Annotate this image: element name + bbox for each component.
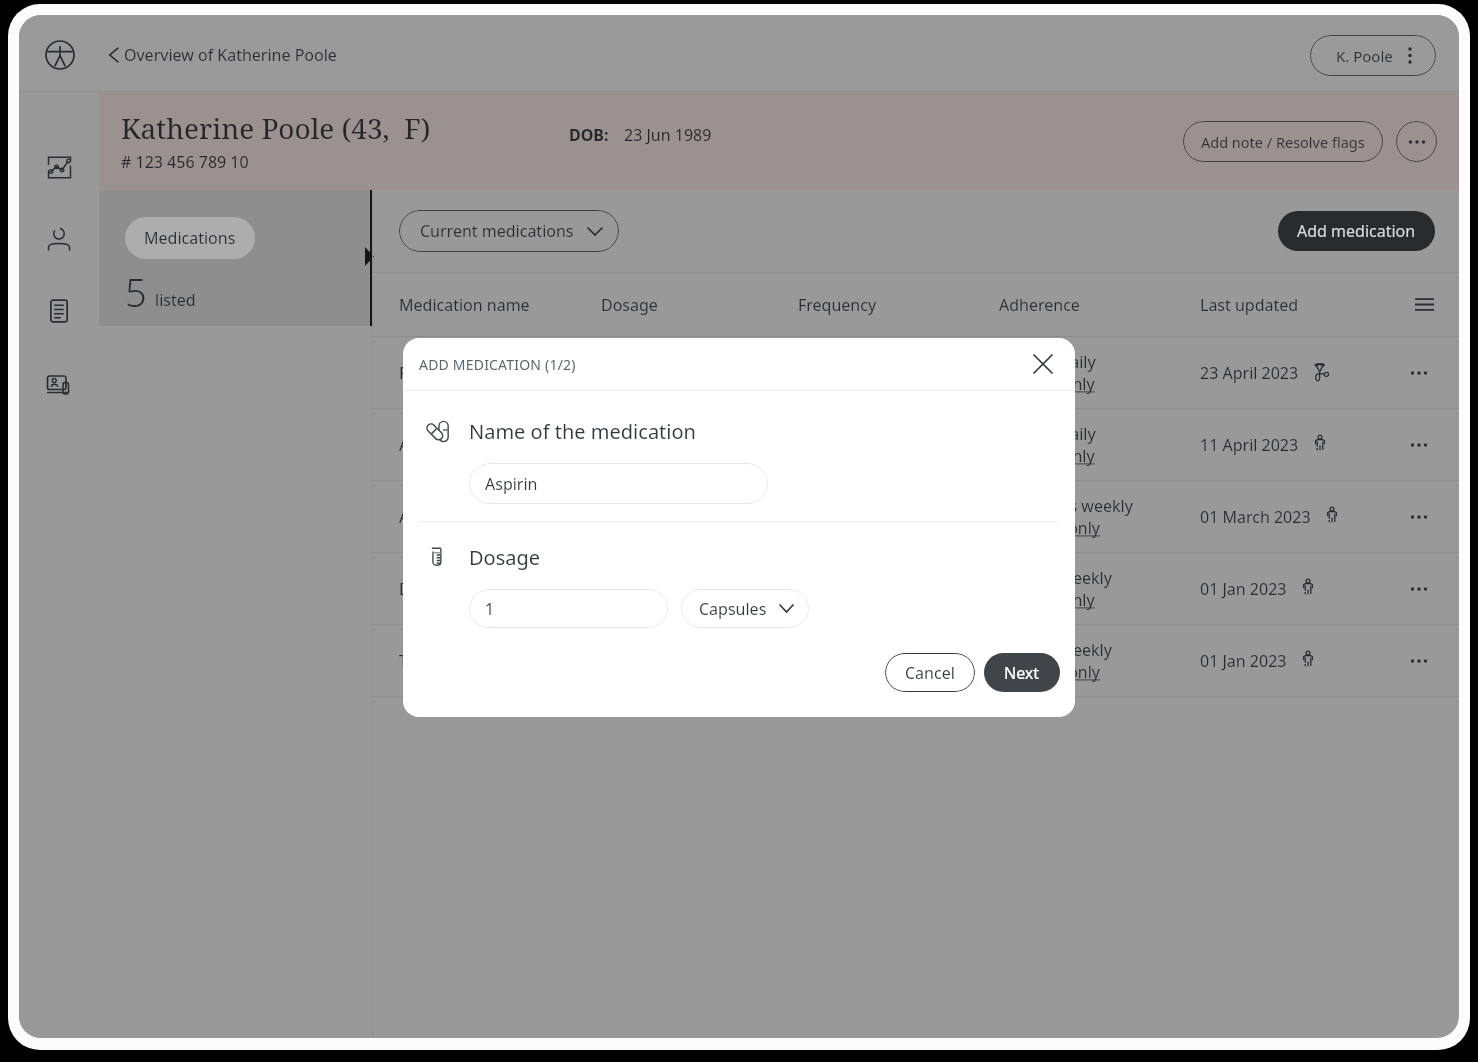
staticText: Cancel <box>905 662 955 684</box>
button[interactable]: Capsules <box>681 589 809 628</box>
staticText: 23 Jun 1989 <box>624 124 712 146</box>
staticText: Medications <box>144 227 236 249</box>
staticText: 01 Jan 2023 <box>1200 650 1287 672</box>
staticText: Katherine Poole (43, F) <box>121 109 431 147</box>
staticText: 23 April 2023 <box>1200 362 1299 384</box>
staticText: morning only <box>999 661 1101 683</box>
button[interactable]: Row options <box>1404 502 1434 532</box>
staticText: Add note / Resolve flags <box>1201 132 1365 152</box>
button[interactable]: Atorvastatin <box>372 481 1459 552</box>
staticText: listed <box>155 289 196 311</box>
staticText: Name of the medication <box>469 418 696 445</box>
button[interactable]: Row options <box>1404 574 1434 604</box>
staticText: morning only <box>798 517 900 539</box>
staticText: 5 <box>125 266 147 318</box>
staticText: Dosage <box>601 294 798 316</box>
button[interactable]: Row options <box>1404 358 1434 388</box>
staticText: Frequency <box>798 294 999 316</box>
staticText: Capsules <box>699 598 767 620</box>
button[interactable]: K. Poole <box>1310 35 1436 76</box>
staticText: 2 doses weekly <box>798 639 911 661</box>
staticText: Next <box>1004 662 1040 684</box>
button[interactable]: Dalteparin <box>372 553 1459 624</box>
button[interactable]: Close <box>1027 348 1059 380</box>
button[interactable]: Amoxicillin <box>372 409 1459 480</box>
staticText: evening only <box>999 445 1095 467</box>
button[interactable]: Patients <box>38 218 80 260</box>
staticText: 01 March 2023 <box>1200 506 1311 528</box>
button[interactable]: Notes <box>38 290 80 332</box>
staticText: 2 doses daily <box>999 351 1096 373</box>
staticText: 20mg <box>601 506 798 528</box>
button[interactable]: Next <box>984 653 1060 692</box>
button[interactable]: Thiamine <box>372 625 1459 696</box>
staticText: 2 capsules weekly <box>999 495 1133 517</box>
staticText: # 123 456 789 10 <box>121 151 249 173</box>
staticText: Overview of Katherine Poole <box>124 44 337 66</box>
staticText: Current medications <box>420 220 574 242</box>
staticText: 2 doses weekly <box>999 639 1112 661</box>
staticText: evening only <box>999 589 1095 611</box>
button[interactable]: Add medication <box>1278 211 1435 251</box>
staticText: 3 doses weekly <box>999 567 1112 589</box>
staticText: 11 April 2023 <box>1200 434 1299 456</box>
button[interactable]: Row options <box>1404 646 1434 676</box>
staticText: 5000U <box>601 578 798 600</box>
staticText: Last updated <box>1200 294 1415 316</box>
staticText: Medication name <box>399 294 601 316</box>
button[interactable]: Cancel <box>885 653 975 692</box>
staticText: morning only <box>798 661 900 683</box>
button[interactable]: Home <box>41 36 79 74</box>
staticText: Dosage <box>469 544 541 571</box>
button[interactable]: Overview of Katherine Poole <box>105 36 339 74</box>
staticText: DOB: <box>569 124 609 146</box>
staticText: 01 Jan 2023 <box>1200 578 1287 600</box>
staticText: 1 <box>485 598 495 620</box>
staticText: Add medication <box>1297 220 1416 242</box>
button[interactable]: Trends <box>38 146 80 188</box>
staticText: Paracetamol <box>399 362 601 384</box>
button[interactable]: 1 <box>469 589 668 628</box>
button[interactable]: Paracetamol <box>372 337 1459 408</box>
button[interactable]: Medications <box>99 190 372 326</box>
staticText: Atorvastatin <box>399 506 601 528</box>
staticText: Amoxicillin <box>399 434 601 456</box>
staticText: K. Poole <box>1336 46 1393 66</box>
staticText: Dalteparin <box>399 578 601 600</box>
staticText: morning only <box>999 517 1101 539</box>
staticText: Thiamine <box>399 650 601 672</box>
button[interactable]: More options <box>1396 121 1437 162</box>
button[interactable]: Aspirin <box>469 463 768 504</box>
button[interactable]: Consultations <box>38 362 80 404</box>
button[interactable]: Current medications <box>399 210 619 252</box>
staticText: ADD MEDICATION (1/2) <box>419 355 576 374</box>
button[interactable]: Row options <box>1404 430 1434 460</box>
button[interactable]: Add note / Resolve flags <box>1183 121 1383 162</box>
staticText: Adherence <box>999 294 1200 316</box>
staticText: 250mg <box>601 434 798 456</box>
staticText: Aspirin <box>485 473 538 495</box>
staticText: evening only <box>999 373 1095 395</box>
staticText: morning only <box>798 373 900 395</box>
staticText: 2 doses daily <box>999 423 1096 445</box>
